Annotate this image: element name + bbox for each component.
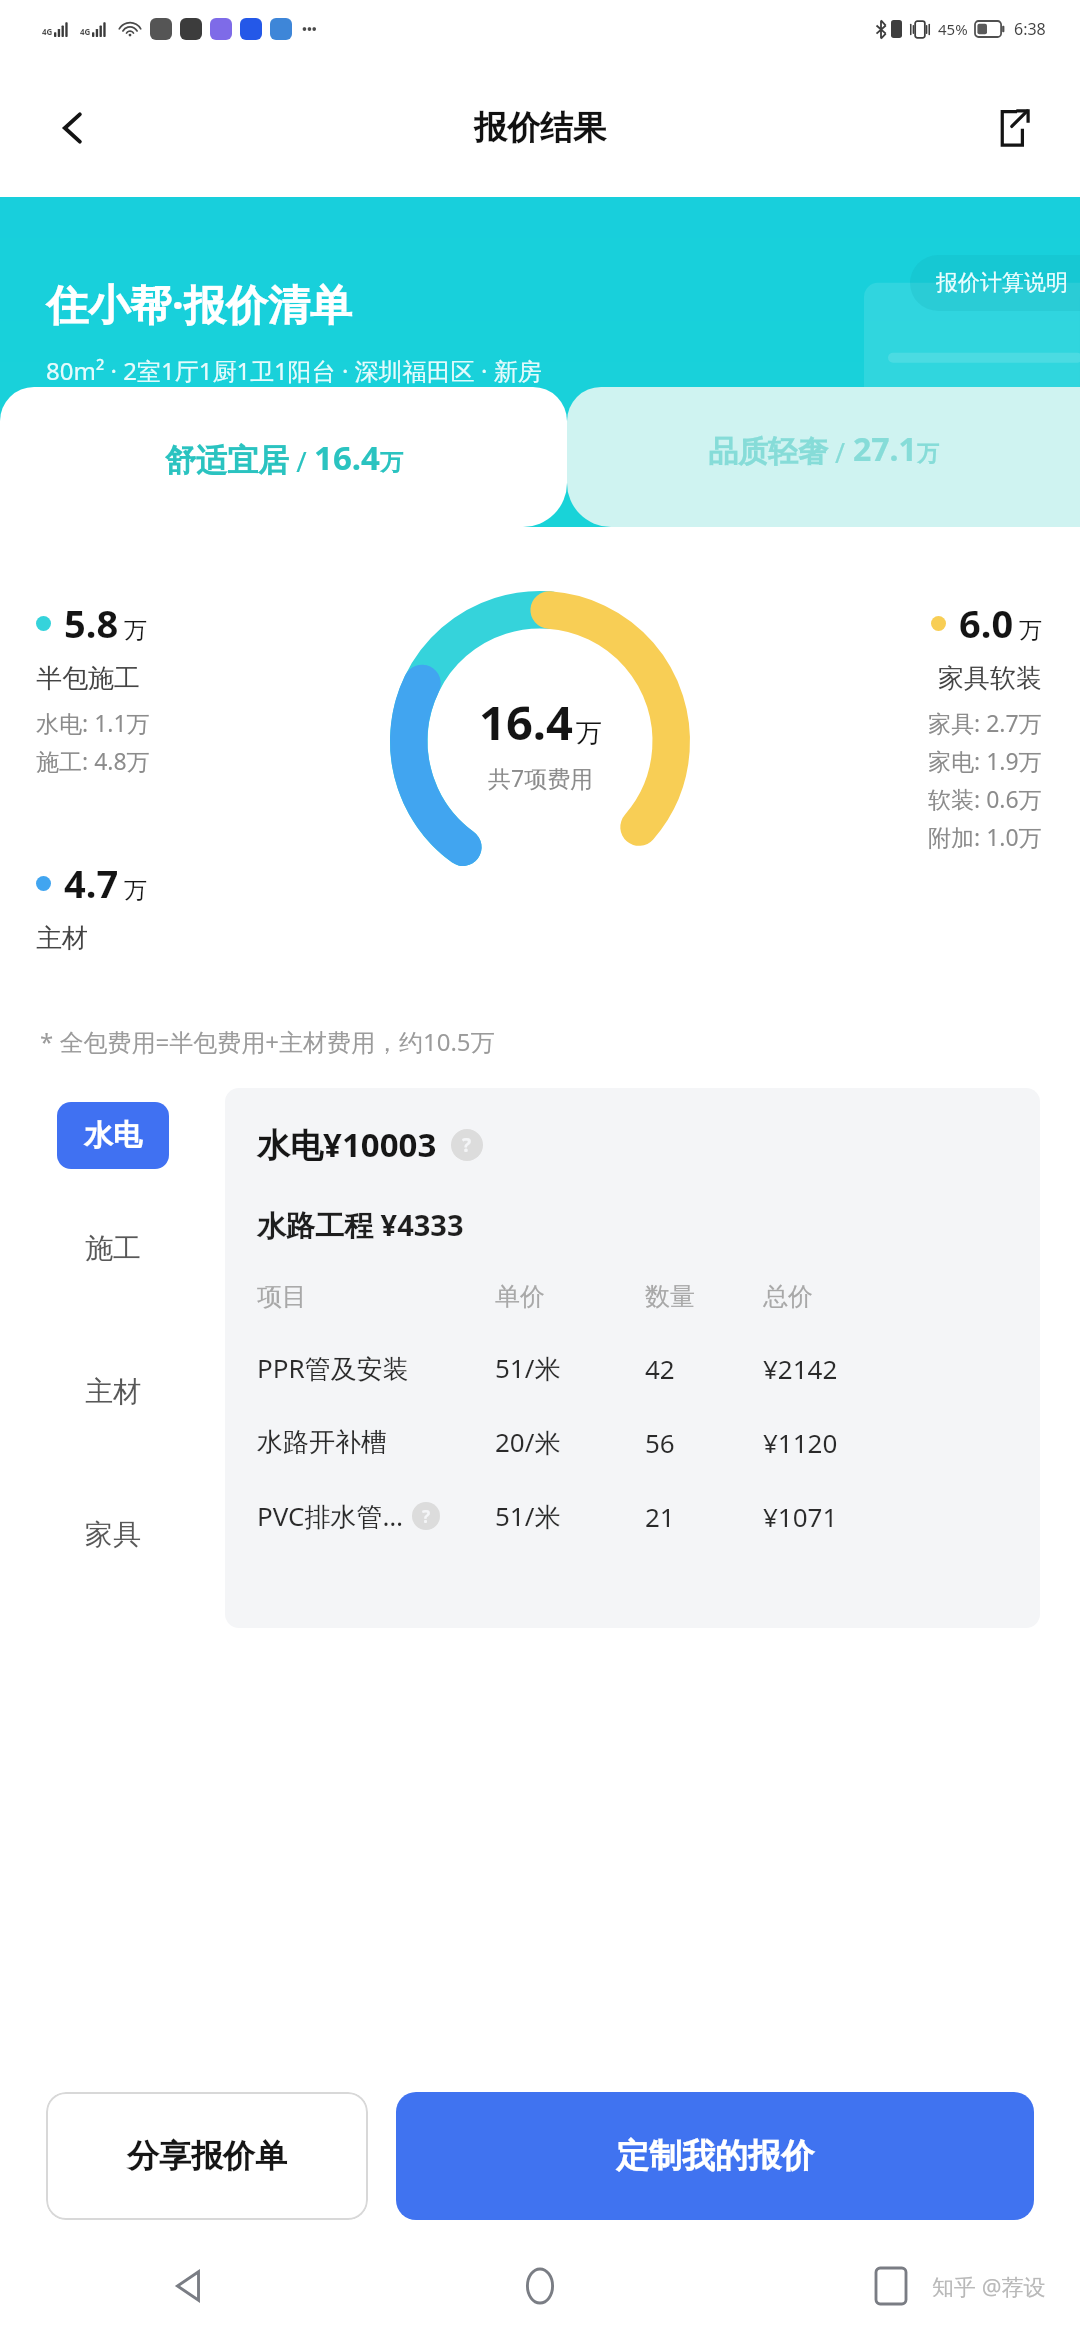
button[interactable]: Back	[40, 95, 106, 161]
staticText: ?	[462, 1132, 472, 1158]
staticText: 施工	[85, 1231, 141, 1266]
staticText: 万	[124, 616, 147, 645]
staticText: 6.0	[959, 597, 1014, 649]
staticText: 5.8	[64, 597, 119, 649]
button[interactable]: 主材	[0, 1364, 225, 1419]
staticText: 主材	[36, 922, 88, 955]
staticText: 知乎 @荐设	[932, 2271, 1046, 2301]
staticText: 数量	[645, 1281, 695, 1312]
staticText: 报价结果	[474, 107, 606, 149]
staticText: 27.1	[853, 427, 917, 471]
staticText: 家具: 2.7万	[928, 707, 1042, 738]
staticText: 家电: 1.9万	[928, 745, 1042, 776]
staticText: ¥1071	[763, 1499, 838, 1534]
button[interactable]: 定制我的报价	[396, 2092, 1034, 2220]
staticText: 4.7	[64, 857, 119, 909]
staticText: 4G	[42, 26, 53, 37]
button[interactable]: 家具	[0, 1507, 225, 1562]
staticText: 万	[576, 717, 602, 750]
staticText: 80m² · 2室1厅1厨1卫1阳台 · 深圳福田区 · 新房	[46, 354, 542, 387]
staticText: 万	[124, 876, 147, 905]
staticText: /	[828, 434, 853, 471]
staticText: 21	[645, 1499, 675, 1534]
staticText: 42	[645, 1351, 675, 1386]
button[interactable]: Share	[980, 97, 1042, 159]
staticText: 水路开补槽	[257, 1426, 387, 1459]
staticText: 品质轻奢	[708, 433, 828, 471]
staticText: 舒适宜居	[165, 441, 289, 480]
staticText: 16.4	[479, 690, 573, 754]
staticText: 软装: 0.6万	[928, 783, 1042, 814]
staticText: 6:38	[1014, 18, 1046, 40]
staticText: 51/米	[495, 1498, 561, 1534]
button[interactable]: Home	[501, 2247, 579, 2325]
staticText: 水电	[84, 1117, 142, 1154]
staticText: 施工: 4.8万	[36, 745, 150, 776]
staticText: 报价计算说明	[936, 269, 1068, 297]
staticText: 16.4	[314, 435, 380, 480]
staticText: ?	[422, 1505, 431, 1528]
staticText: 45%	[938, 19, 968, 39]
button[interactable]: 品质轻奢	[567, 387, 1080, 527]
staticText: * 全包费用=半包费用+主材费用，约10.5万	[40, 1025, 495, 1058]
staticText: 住小帮·报价清单	[46, 275, 352, 332]
staticText: •••	[302, 20, 317, 38]
staticText: 总价	[763, 1281, 813, 1312]
staticText: ¥1120	[763, 1425, 838, 1460]
staticText: 单价	[495, 1281, 545, 1312]
staticText: 万	[917, 440, 939, 468]
button[interactable]: 施工	[0, 1221, 225, 1276]
button[interactable]: Recents	[852, 2247, 930, 2325]
staticText: 56	[645, 1425, 675, 1460]
button[interactable]: 分享报价单	[46, 2092, 368, 2220]
staticText: 20/米	[495, 1424, 561, 1460]
staticText: 水路工程 ¥4333	[257, 1205, 464, 1245]
staticText: 主材	[85, 1374, 141, 1409]
staticText: 水电: 1.1万	[36, 707, 150, 738]
staticText: /	[289, 442, 314, 480]
staticText: 半包施工	[36, 662, 140, 695]
staticText: PVC排水管…	[257, 1498, 404, 1534]
staticText: 共7项费用	[488, 762, 594, 793]
button[interactable]: 报价计算说明	[910, 255, 1080, 311]
staticText: PPR管及安装	[257, 1350, 409, 1386]
staticText: 家具	[85, 1517, 141, 1552]
button[interactable]: 水电	[57, 1102, 169, 1169]
staticText: 万	[1019, 616, 1042, 645]
staticText: 家具软装	[938, 662, 1042, 695]
staticText: 4G	[80, 26, 91, 37]
staticText: 分享报价单	[127, 2136, 287, 2176]
staticText: 水电¥10003	[257, 1122, 437, 1167]
staticText: ¥2142	[763, 1351, 838, 1386]
staticText: 定制我的报价	[616, 2135, 814, 2177]
staticText: 项目	[257, 1281, 307, 1312]
staticText: 附加: 1.0万	[928, 821, 1042, 852]
button[interactable]: Back	[150, 2247, 228, 2325]
staticText: 51/米	[495, 1350, 561, 1386]
staticText: 万	[380, 448, 403, 477]
button[interactable]: 舒适宜居	[0, 387, 567, 527]
